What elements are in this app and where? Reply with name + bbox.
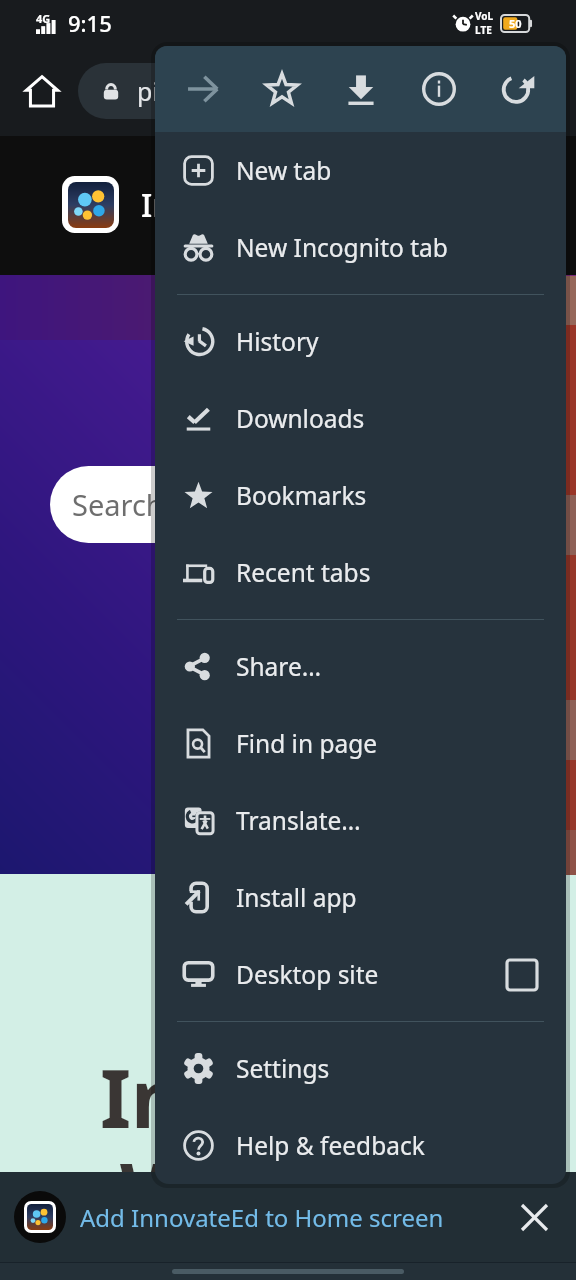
staticText: New tab <box>236 154 332 187</box>
button[interactable]: Close <box>510 1193 558 1241</box>
staticText: Desktop site <box>236 958 379 991</box>
button[interactable]: Add InnovateEd to Home screen <box>80 1201 510 1234</box>
button[interactable]: Page info <box>408 58 470 120</box>
button[interactable]: Translate… <box>155 782 566 859</box>
button[interactable]: Forward <box>172 58 234 120</box>
button[interactable]: New tab <box>155 132 566 209</box>
staticText: pixabay.com <box>137 74 285 108</box>
button[interactable]: History <box>155 303 566 380</box>
button[interactable]: New Incognito tab <box>155 209 566 286</box>
staticText: New Incognito tab <box>236 231 448 264</box>
button[interactable]: Find in page <box>155 705 566 782</box>
staticText: In <box>100 1042 184 1151</box>
staticText: Add InnovateEd to Home screen <box>80 1201 444 1234</box>
staticText: Bookmarks <box>236 479 367 512</box>
button[interactable]: Search <box>50 466 380 543</box>
staticText: InnovateEd <box>141 183 315 227</box>
staticText: VoL <box>475 9 494 23</box>
button[interactable]: Home <box>6 55 78 127</box>
button[interactable]: Bookmark <box>251 58 313 120</box>
button[interactable]: Recent tabs <box>155 534 566 611</box>
staticText: LTE <box>475 23 492 37</box>
staticText: W <box>120 1136 198 1245</box>
button[interactable]: Desktop site <box>155 936 566 1013</box>
staticText: Recent tabs <box>236 556 371 589</box>
staticText: Search <box>72 485 164 524</box>
button[interactable]: Bookmarks <box>155 457 566 534</box>
button[interactable]: Downloads <box>155 380 566 457</box>
button[interactable]: Download <box>330 58 392 120</box>
button[interactable]: Settings <box>155 1030 566 1107</box>
staticText: Translate… <box>236 804 361 837</box>
staticText: Settings <box>236 1052 330 1085</box>
button[interactable]: Reload <box>487 58 549 120</box>
button[interactable]: Install app <box>155 859 566 936</box>
staticText: Help & feedback <box>236 1129 425 1162</box>
button[interactable]: pixabay.com <box>78 63 562 119</box>
staticText: 9:15 <box>68 8 112 38</box>
staticText: 4G <box>36 11 51 26</box>
button[interactable]: Help & feedback <box>155 1107 566 1184</box>
staticText: History <box>236 325 319 358</box>
staticText: Share… <box>236 650 322 683</box>
staticText: Find in page <box>236 727 378 760</box>
staticText: Downloads <box>236 402 365 435</box>
staticText: 50 <box>509 16 522 31</box>
button[interactable]: Share… <box>155 628 566 705</box>
staticText: Install app <box>236 881 357 914</box>
